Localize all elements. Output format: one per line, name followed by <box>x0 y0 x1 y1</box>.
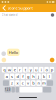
staticText: d <box>16 74 18 79</box>
button[interactable]: p <box>49 67 54 72</box>
button[interactable] <box>16 87 19 93</box>
staticText: q <box>3 67 5 72</box>
button[interactable]: j <box>36 74 41 79</box>
staticText: o <box>45 67 47 72</box>
button[interactable] <box>3 80 9 86</box>
button[interactable]: g <box>26 74 30 79</box>
staticText: h <box>32 74 34 79</box>
staticText: k <box>43 74 45 79</box>
staticText: Chat started <box>2 13 18 17</box>
button[interactable] <box>43 87 51 93</box>
button[interactable]: t <box>23 67 28 72</box>
button[interactable]: v <box>26 80 30 86</box>
button[interactable]: x <box>15 80 20 86</box>
staticText: x <box>16 80 18 86</box>
staticText: Hello <box>9 50 18 55</box>
button[interactable]: n <box>36 80 41 86</box>
staticText: r <box>19 67 21 72</box>
button[interactable]: d <box>15 74 20 79</box>
button[interactable]: Send <box>50 58 54 62</box>
staticText: c <box>22 80 24 86</box>
button[interactable]: y <box>28 67 33 72</box>
staticText: u <box>35 67 37 72</box>
staticText: p <box>51 67 53 72</box>
staticText: Store Support <box>7 5 33 11</box>
staticText: m <box>42 80 46 86</box>
button[interactable]: k <box>42 74 46 79</box>
button[interactable] <box>20 87 42 93</box>
staticText: v <box>27 80 29 86</box>
staticText: n <box>38 80 40 86</box>
staticText: z <box>11 80 13 86</box>
staticText: 123 <box>5 88 11 91</box>
staticText: t <box>25 67 26 72</box>
staticText: y <box>30 67 32 72</box>
button[interactable]: c <box>20 80 25 86</box>
staticText: l <box>49 74 50 79</box>
button[interactable]: Add attachment <box>2 58 6 62</box>
button[interactable]: a <box>4 74 9 79</box>
button[interactable]: r <box>18 67 22 72</box>
button[interactable]: Agent profile <box>51 13 54 17</box>
button[interactable]: q <box>2 67 6 72</box>
button[interactable] <box>11 87 15 93</box>
staticText: w <box>8 67 11 72</box>
button[interactable] <box>47 80 53 86</box>
staticText: i <box>41 67 42 72</box>
button[interactable]: f <box>20 74 25 79</box>
staticText: e <box>14 67 16 72</box>
staticText: s <box>11 74 13 79</box>
button[interactable]: m <box>42 80 46 86</box>
staticText: f <box>22 74 23 79</box>
staticText: b <box>32 80 34 86</box>
button[interactable]: s <box>10 74 14 79</box>
button[interactable]: b <box>31 80 36 86</box>
button[interactable]: u <box>34 67 38 72</box>
button[interactable]: z <box>10 80 14 86</box>
button[interactable]: w <box>7 67 12 72</box>
staticText: g <box>27 74 29 79</box>
button[interactable]: o <box>44 67 49 72</box>
button[interactable]: l <box>47 74 51 79</box>
button[interactable]: h <box>31 74 36 79</box>
button[interactable]: i <box>39 67 43 72</box>
staticText: j <box>38 74 39 79</box>
staticText: a <box>6 74 8 79</box>
button[interactable]: e <box>12 67 17 72</box>
button[interactable]: 123 <box>5 87 11 93</box>
button[interactable]: Back <box>1 4 7 12</box>
